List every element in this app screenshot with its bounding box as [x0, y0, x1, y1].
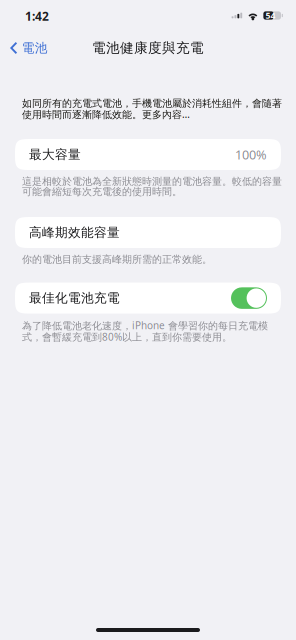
button[interactable]: 電池: [0, 36, 56, 60]
staticText: 為了降低電池老化速度，iPhone 會學習你的每日充電模式，會暫緩充電到80%以…: [22, 319, 268, 344]
staticText: 這是相較於電池為全新狀態時測量的電池容量。較低的容量可能會縮短每次充電後的使用時…: [22, 175, 282, 198]
staticText: 1:42: [25, 8, 49, 24]
staticText: 高峰期效能容量: [29, 224, 120, 240]
staticText: 最佳化電池充電: [29, 290, 120, 306]
staticText: 電池健康度與充電: [92, 39, 204, 56]
button[interactable]: 高峰期效能容量: [29, 224, 267, 240]
staticText: 54: [266, 10, 276, 21]
staticText: 電池: [22, 40, 48, 56]
staticText: 最大容量: [29, 146, 81, 162]
button[interactable]: 最佳化電池充電: [29, 287, 267, 309]
staticText: 100%: [235, 146, 267, 163]
button[interactable]: 最大容量: [29, 146, 267, 163]
staticText: 如同所有的充電式電池，手機電池屬於消耗性組件，會隨著使用時間而逐漸降低效能。更多…: [22, 97, 282, 121]
staticText: 你的電池目前支援高峰期所需的正常效能。: [22, 253, 212, 266]
